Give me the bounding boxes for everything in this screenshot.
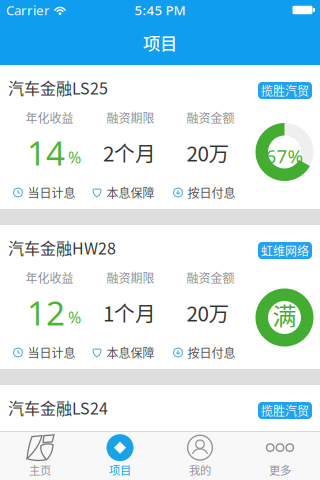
staticText: 虹维网络 [261,242,309,259]
button[interactable]: 虹维网络 [258,242,312,259]
staticText: 本息保障 [106,344,154,361]
button[interactable]: 汽车金融LS25 [0,65,320,209]
staticText: 20万 [186,297,229,327]
staticText: 项目 [143,30,177,55]
staticText: 揽胜汽贸 [261,82,309,99]
staticText: 1个月 [103,297,156,327]
button[interactable]: 汽车金融LS24 [0,385,320,431]
staticText: 按日付息 [187,184,235,201]
button[interactable]: 更多 [240,432,320,480]
staticText: 我的 [189,462,211,478]
staticText: 本息保障 [106,184,154,201]
button[interactable]: 汽车金融HW28 [0,225,320,369]
staticText: 项目 [109,462,131,478]
staticText: 2个月 [103,137,156,167]
staticText: 融资期限 [106,109,154,126]
staticText: 融资金额 [186,109,234,126]
staticText: 14 [27,130,65,175]
staticText: 汽车金融HW28 [8,236,116,259]
staticText: 5:45 PM [134,1,185,19]
staticText: Carrier [6,1,50,19]
staticText: 20万 [186,137,229,167]
staticText: % [68,307,81,328]
staticText: 12 [27,290,65,335]
staticText: % [68,147,81,168]
staticText: 满 [272,297,296,332]
staticText: 67% [265,144,303,168]
staticText: 汽车金融LS25 [8,76,108,99]
staticText: 当日计息 [27,184,75,201]
staticText: 按日付息 [187,344,235,361]
staticText: 当日计息 [27,344,75,361]
staticText: 年化收益 [25,269,73,286]
button[interactable]: 揽胜汽贸 [258,402,312,419]
staticText: 年化收益 [25,109,73,126]
button[interactable]: 项目 [80,432,160,480]
staticText: 汽车金融LS24 [8,396,108,419]
staticText: 融资金额 [186,269,234,286]
staticText: 更多 [269,462,291,478]
button[interactable]: 我的 [160,432,240,480]
staticText: 主页 [29,462,51,478]
staticText: 融资期限 [106,269,154,286]
button[interactable]: 主页 [0,432,80,480]
button[interactable]: 揽胜汽贸 [258,82,312,99]
staticText: 揽胜汽贸 [261,402,309,419]
